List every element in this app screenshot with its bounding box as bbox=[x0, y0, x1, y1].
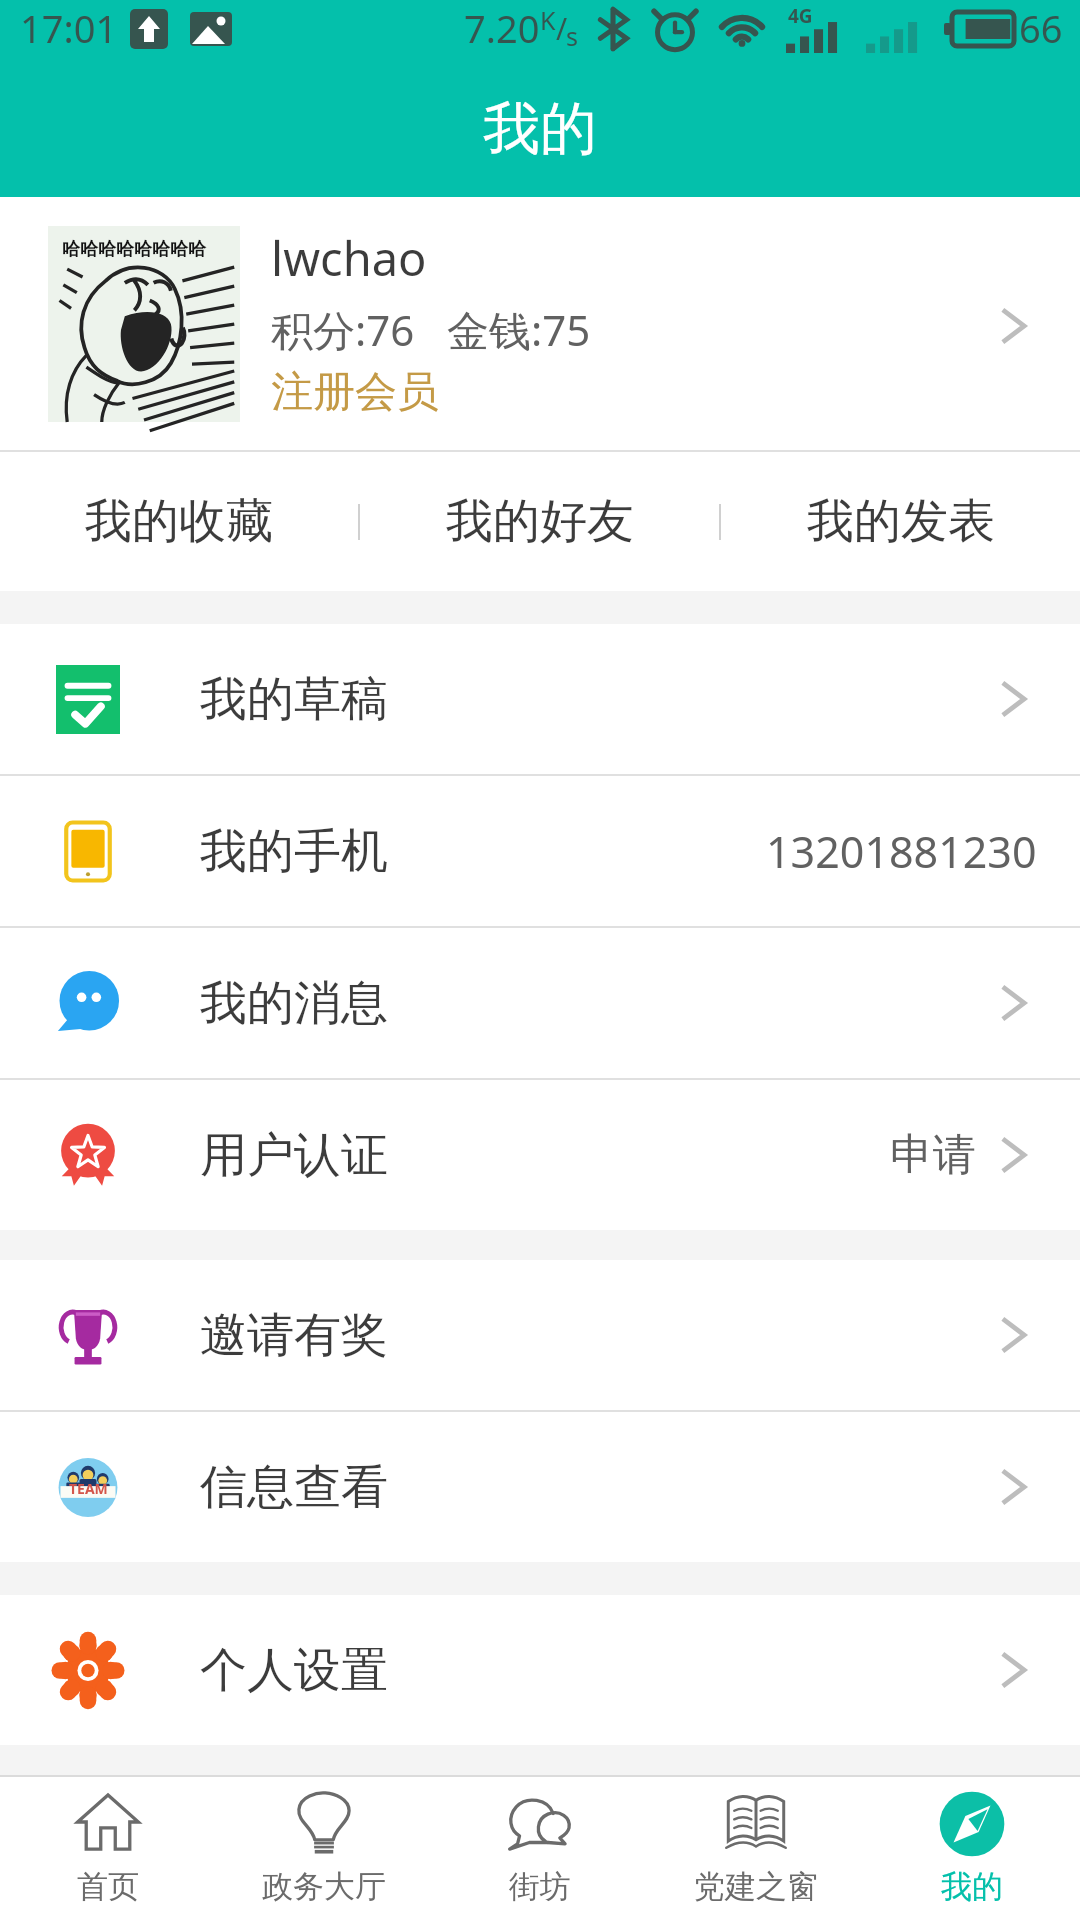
staticText: 个人设置 bbox=[200, 1641, 388, 1700]
staticText: 哈哈哈哈哈哈哈哈 bbox=[62, 238, 206, 261]
staticText: 4G bbox=[788, 3, 813, 29]
button[interactable]: 政务大厅 bbox=[216, 1777, 432, 1920]
button[interactable]: 街坊 bbox=[432, 1777, 648, 1920]
button[interactable]: 个人资料 lwchao bbox=[0, 197, 1080, 450]
staticText: 信息查看 bbox=[200, 1458, 388, 1517]
button[interactable]: 我的发表 bbox=[721, 452, 1080, 591]
button[interactable]: TEAM bbox=[0, 1412, 1080, 1562]
staticText: lwchao bbox=[271, 226, 427, 290]
button[interactable]: 我的手机 bbox=[0, 776, 1080, 926]
staticText: 我的好友 bbox=[446, 492, 634, 551]
staticText: 邀请有奖 bbox=[200, 1306, 388, 1365]
button[interactable]: 首页 bbox=[0, 1777, 216, 1920]
staticText: 申请 bbox=[890, 1128, 976, 1182]
staticText: 我的手机 bbox=[200, 822, 388, 881]
staticText: / bbox=[556, 8, 568, 49]
staticText: 我的 bbox=[483, 93, 597, 165]
staticText: 用户认证 bbox=[200, 1126, 388, 1185]
button[interactable]: 个人设置 bbox=[0, 1595, 1080, 1745]
button[interactable]: 我的好友 bbox=[360, 452, 719, 591]
staticText: 66 bbox=[1019, 2, 1063, 54]
button[interactable]: 我的消息 bbox=[0, 928, 1080, 1078]
staticText: 注册会员 bbox=[271, 366, 439, 419]
staticText: 我的发表 bbox=[807, 492, 995, 551]
button[interactable]: 我的收藏 bbox=[0, 452, 358, 591]
staticText: 13201881230 bbox=[766, 822, 1037, 881]
staticText: 积分:76 金钱:75 bbox=[271, 301, 591, 358]
staticText: K bbox=[540, 3, 556, 37]
staticText: 我的草稿 bbox=[200, 670, 388, 729]
staticText: 街坊 bbox=[509, 1867, 571, 1906]
button[interactable]: 党建之窗 bbox=[648, 1777, 864, 1920]
staticText: 我的收藏 bbox=[85, 492, 273, 551]
button[interactable]: 我的草稿 bbox=[0, 624, 1080, 774]
staticText: TEAM bbox=[69, 1479, 108, 1498]
staticText: 我的消息 bbox=[200, 974, 388, 1033]
button[interactable]: 邀请有奖 bbox=[0, 1260, 1080, 1410]
staticText: 党建之窗 bbox=[694, 1867, 818, 1906]
staticText: 我的 bbox=[941, 1867, 1003, 1906]
staticText: 17:01 bbox=[20, 2, 118, 54]
staticText: 政务大厅 bbox=[262, 1867, 386, 1906]
button[interactable]: 用户认证 bbox=[0, 1080, 1080, 1230]
button[interactable]: 我的 bbox=[864, 1777, 1080, 1920]
staticText: 首页 bbox=[77, 1867, 139, 1906]
staticText: s bbox=[566, 19, 578, 53]
staticText: 7.20 bbox=[464, 2, 540, 54]
